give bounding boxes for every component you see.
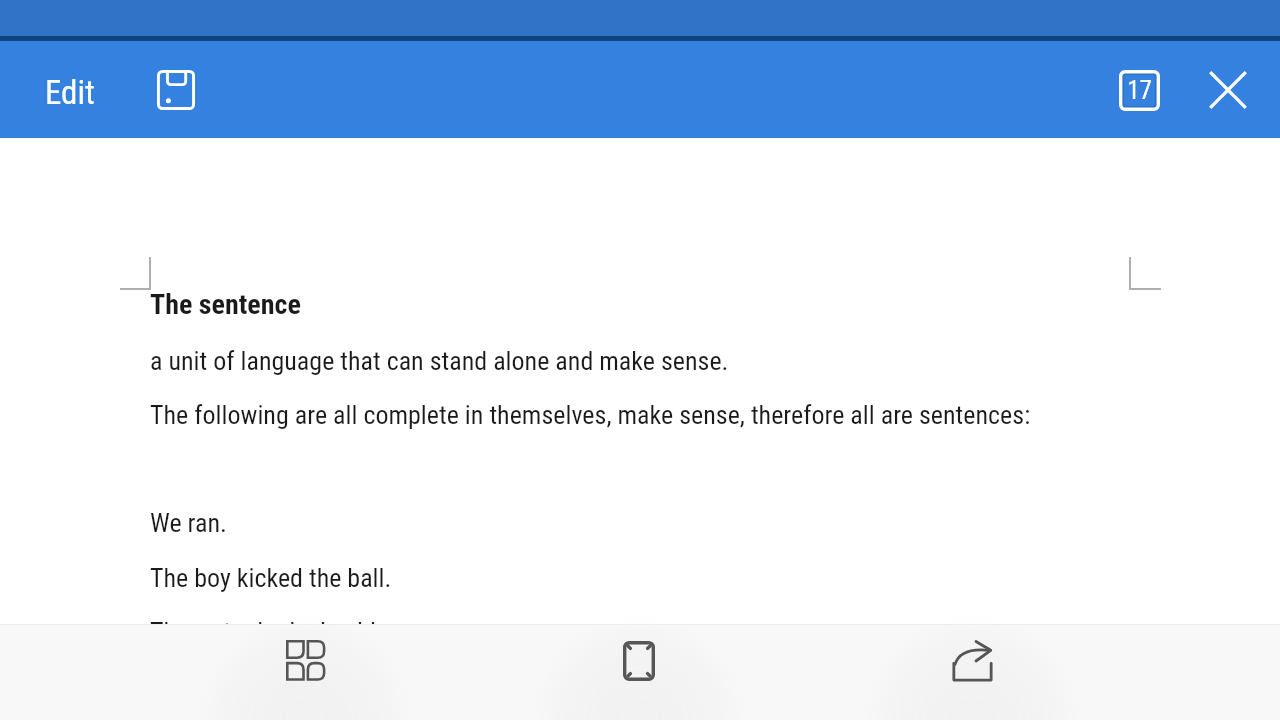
button[interactable]: Page 17 bbox=[1103, 54, 1175, 126]
button[interactable]: Edit bbox=[11, 57, 129, 128]
button[interactable]: Share bbox=[936, 624, 1009, 697]
staticText: Edit bbox=[45, 73, 95, 112]
staticText: 17 bbox=[1127, 76, 1152, 105]
staticText: The following are all complete in themse… bbox=[150, 400, 1031, 430]
button[interactable]: Close bbox=[1192, 54, 1264, 126]
staticText: The water looked cold. bbox=[150, 617, 383, 647]
button[interactable]: Save bbox=[140, 54, 212, 126]
staticText: The boy kicked the ball. bbox=[150, 563, 392, 593]
staticText: a unit of language that can stand alone … bbox=[150, 346, 729, 376]
button[interactable]: Fit page bbox=[602, 624, 675, 697]
staticText: The sentence bbox=[150, 288, 301, 321]
staticText: We ran. bbox=[150, 508, 227, 538]
button[interactable]: Page thumbnails bbox=[269, 624, 342, 697]
